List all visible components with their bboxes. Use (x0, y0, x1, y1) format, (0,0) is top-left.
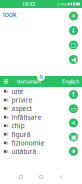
button[interactable]: )) (0, 96, 82, 104)
staticText: )) (6, 97, 8, 102)
button[interactable]: Menu (0, 76, 12, 87)
button[interactable]: Copy all (67, 102, 80, 115)
staticText: )) (6, 132, 8, 137)
staticText: )) (6, 89, 8, 94)
staticText: ✕ (70, 12, 76, 20)
staticText: aspect (11, 104, 31, 113)
staticText: figură (11, 130, 30, 139)
staticText: uitătură (11, 147, 36, 156)
staticText: 0.1K/s (57, 1, 67, 7)
button[interactable]: )) (0, 147, 82, 156)
staticText: )) (6, 114, 8, 120)
staticText: ◻ (70, 41, 76, 49)
staticText: ▣ (70, 133, 76, 141)
button[interactable]: )) (0, 87, 82, 96)
button[interactable]: English (59, 76, 82, 87)
button[interactable]: Speak (67, 53, 80, 66)
staticText: fizionomie (11, 138, 44, 147)
staticText: ★ (70, 147, 76, 155)
button[interactable]: Translate (67, 24, 80, 37)
staticText: )) (6, 106, 8, 111)
staticText: privire (11, 95, 32, 104)
staticText: )) (6, 123, 8, 128)
staticText: < (71, 118, 75, 127)
staticText: 19:32 (22, 0, 35, 8)
button[interactable]: Romanian (12, 76, 45, 87)
staticText: ⇅ (39, 74, 43, 80)
staticText: ▭ (70, 105, 76, 112)
button[interactable]: Save (67, 131, 80, 144)
button[interactable]: Share (67, 116, 80, 129)
staticText: look (3, 10, 17, 19)
button[interactable]: )) (0, 130, 82, 139)
button[interactable]: )) (0, 121, 82, 130)
button[interactable]: Favorite (67, 145, 80, 158)
staticText: )) (6, 140, 8, 145)
button[interactable]: )) (0, 104, 82, 113)
staticText: înfățișare (11, 113, 41, 122)
staticText: < (59, 173, 63, 181)
button[interactable]: )) (0, 113, 82, 121)
button[interactable]: Copy (67, 38, 80, 51)
staticText: English (62, 78, 79, 85)
button[interactable]: Back (11, 171, 31, 182)
button[interactable]: Clear text (67, 9, 80, 22)
button[interactable]: Recents (51, 171, 71, 182)
button[interactable]: Share up (67, 88, 80, 101)
staticText: uite (11, 87, 23, 96)
staticText: ◀ (71, 56, 76, 63)
staticText: Romanian (16, 78, 40, 85)
button[interactable]: )) (0, 139, 82, 147)
staticText: chip (11, 121, 24, 130)
button[interactable]: Swap languages (36, 72, 46, 82)
staticText: )) (6, 149, 8, 154)
staticText: ↓ (70, 27, 76, 34)
button[interactable]: Home (31, 171, 51, 182)
staticText: ↑ (70, 91, 76, 98)
